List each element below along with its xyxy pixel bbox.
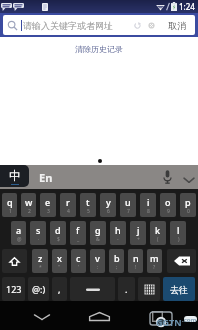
staticText: u	[125, 196, 131, 208]
staticText: r	[66, 196, 70, 208]
staticText: 5	[87, 208, 90, 215]
button[interactable]: u	[120, 193, 136, 217]
button[interactable]: 中	[0, 165, 29, 187]
staticText: En	[39, 170, 53, 185]
button[interactable]: .	[118, 277, 135, 301]
button[interactable]: Refresh	[130, 18, 144, 32]
button[interactable]: g	[90, 221, 106, 245]
staticText: p	[185, 196, 191, 208]
staticText: @:)	[32, 283, 46, 295]
staticText: _	[77, 236, 80, 243]
staticText: s	[36, 224, 41, 236]
button[interactable]: n	[128, 249, 143, 273]
button[interactable]: @:)	[28, 277, 49, 301]
button[interactable]: b	[109, 249, 124, 273]
staticText: ·	[38, 236, 40, 243]
button[interactable]: d	[50, 221, 66, 245]
button[interactable]: m	[147, 249, 162, 273]
staticText: -	[117, 236, 119, 243]
staticText: 123	[6, 283, 22, 295]
staticText: n	[133, 252, 139, 264]
button[interactable]: v	[90, 249, 105, 273]
button[interactable]: Switch keyboard	[138, 277, 160, 301]
staticText: &	[96, 236, 100, 243]
staticText: 9	[167, 208, 170, 215]
staticText: ;	[116, 264, 118, 271]
button[interactable]: 去往	[163, 277, 195, 301]
staticText: 0	[187, 208, 190, 215]
staticText: f	[76, 224, 80, 236]
staticText: $	[57, 236, 60, 243]
staticText: "	[58, 264, 61, 271]
staticText: *	[39, 264, 42, 271]
staticText: 1:24	[179, 1, 195, 12]
staticText: i	[147, 196, 150, 208]
staticText: 中	[9, 168, 21, 183]
button[interactable]: Backspace	[167, 249, 196, 273]
button[interactable]: r	[60, 193, 76, 217]
staticText: 清除历史记录	[75, 44, 123, 54]
staticText: :	[97, 264, 99, 271]
staticText: 4	[67, 208, 70, 215]
staticText: q	[7, 196, 13, 208]
button[interactable]: w	[21, 193, 36, 217]
staticText: 1	[9, 208, 12, 215]
staticText: 2	[28, 208, 31, 215]
staticText: j	[137, 224, 140, 236]
button[interactable]: Hide keyboard	[184, 170, 194, 184]
button[interactable]: 123	[2, 277, 25, 301]
button[interactable]: Home	[82, 301, 116, 330]
staticText: 7	[127, 208, 130, 215]
staticText: ?	[153, 264, 156, 271]
staticText: z	[38, 252, 43, 264]
staticText: .	[125, 283, 128, 295]
button[interactable]: Back	[25, 301, 59, 330]
staticText: e	[45, 196, 51, 208]
button[interactable]: e	[40, 193, 56, 217]
button[interactable]: c	[71, 249, 86, 273]
staticText: w	[25, 196, 33, 208]
staticText: (	[157, 236, 159, 243]
button[interactable]: h	[110, 221, 126, 245]
staticText: 6	[107, 208, 110, 215]
button[interactable]: y	[100, 193, 116, 217]
button[interactable]: Voice input	[164, 170, 171, 184]
button[interactable]: k	[150, 221, 166, 245]
button[interactable]: x	[52, 249, 67, 273]
staticText: o	[165, 196, 171, 208]
button[interactable]: 取消	[164, 15, 195, 35]
staticText: 去往	[170, 284, 188, 295]
staticText: 取消	[168, 20, 186, 31]
staticText: 8	[147, 208, 150, 215]
button[interactable]: Clear	[144, 18, 158, 32]
staticText: c	[76, 252, 81, 264]
staticText: d	[55, 224, 61, 236]
staticText: t	[86, 196, 90, 208]
button[interactable]: Space	[70, 277, 115, 301]
button[interactable]: Recents	[140, 301, 174, 330]
staticText: y	[106, 196, 111, 208]
button[interactable]: Shift	[2, 249, 27, 273]
button[interactable]: a	[11, 221, 26, 245]
button[interactable]: t	[80, 193, 96, 217]
staticText: )	[178, 236, 180, 243]
staticText: a	[16, 224, 22, 236]
staticText: GGTN	[156, 316, 182, 328]
button[interactable]: o	[160, 193, 176, 217]
button[interactable]: q	[2, 193, 17, 217]
button[interactable]: p	[180, 193, 196, 217]
staticText: ,	[58, 283, 61, 295]
button[interactable]: s	[30, 221, 46, 245]
staticText: @	[17, 236, 22, 243]
button[interactable]: j	[130, 221, 146, 245]
staticText: !	[135, 264, 137, 271]
staticText: k	[155, 224, 161, 236]
button[interactable]: 清除历史记录	[69, 41, 129, 57]
button[interactable]: z	[32, 249, 48, 273]
button[interactable]: i	[140, 193, 156, 217]
staticText: b	[114, 252, 120, 264]
button[interactable]: f	[70, 221, 86, 245]
button[interactable]: l	[170, 221, 186, 245]
staticText: l	[177, 224, 180, 236]
button[interactable]: ,	[52, 277, 67, 301]
